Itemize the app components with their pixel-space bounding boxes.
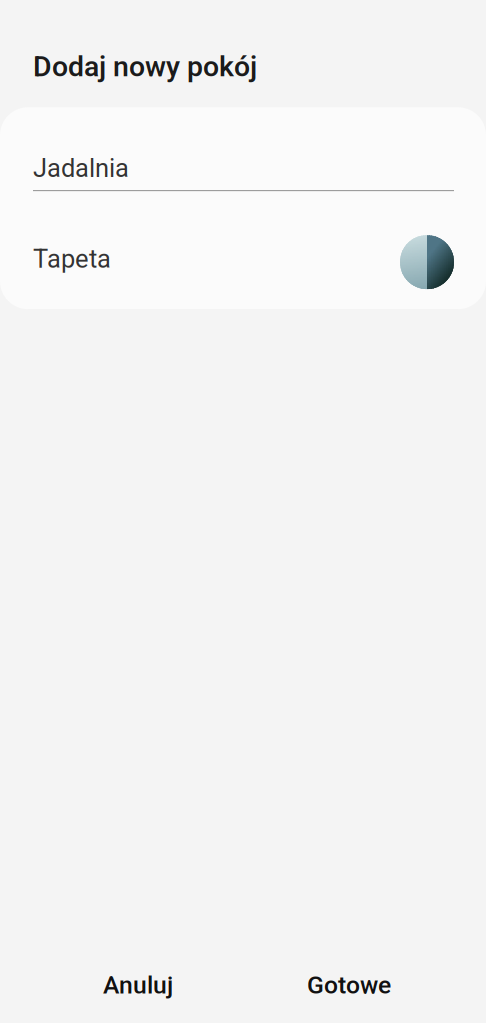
staticText: Anuluj: [103, 970, 173, 999]
staticText: Tapeta: [33, 244, 111, 274]
staticText: Gotowe: [307, 970, 391, 999]
button[interactable]: Anuluj: [38, 961, 238, 1009]
staticText: Dodaj nowy pokój: [33, 50, 257, 83]
button[interactable]: Gotowe: [249, 961, 449, 1009]
button[interactable]: Tapeta: [0, 191, 486, 309]
button[interactable]: Jadalnia: [0, 107, 486, 191]
staticText: Jadalnia: [33, 153, 129, 183]
